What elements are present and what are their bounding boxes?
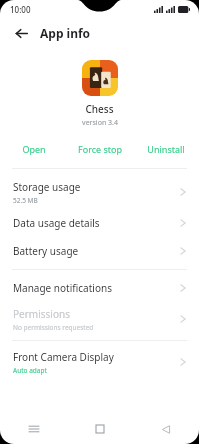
- staticText: Auto adapt: [13, 366, 47, 375]
- staticText: 10:00: [10, 4, 31, 15]
- button[interactable]: Front Camera Display: [0, 345, 199, 379]
- button[interactable]: Permissions: [0, 302, 199, 336]
- staticText: Chess: [85, 102, 114, 116]
- button[interactable]: Data usage details: [0, 209, 199, 237]
- staticText: Force stop: [78, 143, 122, 155]
- staticText: Permissions: [13, 307, 70, 321]
- button[interactable]: Open: [0, 136, 67, 162]
- staticText: version 3.4: [82, 118, 118, 128]
- staticText: App info: [40, 25, 91, 41]
- button[interactable]: Back: [11, 23, 31, 43]
- staticText: Storage usage: [13, 180, 81, 194]
- button[interactable]: Uninstall: [133, 136, 199, 162]
- staticText: Uninstall: [147, 143, 185, 155]
- button[interactable]: Force stop: [67, 136, 133, 162]
- button[interactable]: Battery usage: [0, 237, 199, 265]
- staticText: Data usage details: [13, 216, 100, 230]
- staticText: Front Camera Display: [13, 350, 114, 364]
- button[interactable]: Storage usage: [0, 175, 199, 209]
- button[interactable]: Manage notifications: [0, 274, 199, 302]
- button[interactable]: Recent apps: [0, 414, 67, 444]
- button[interactable]: Back: [133, 414, 199, 444]
- staticText: 52.5 MB: [13, 196, 38, 205]
- staticText: Manage notifications: [13, 281, 112, 295]
- staticText: No permissions requested: [13, 323, 94, 332]
- button[interactable]: Home: [67, 414, 133, 444]
- staticText: Battery usage: [13, 244, 79, 258]
- staticText: Open: [22, 143, 46, 155]
